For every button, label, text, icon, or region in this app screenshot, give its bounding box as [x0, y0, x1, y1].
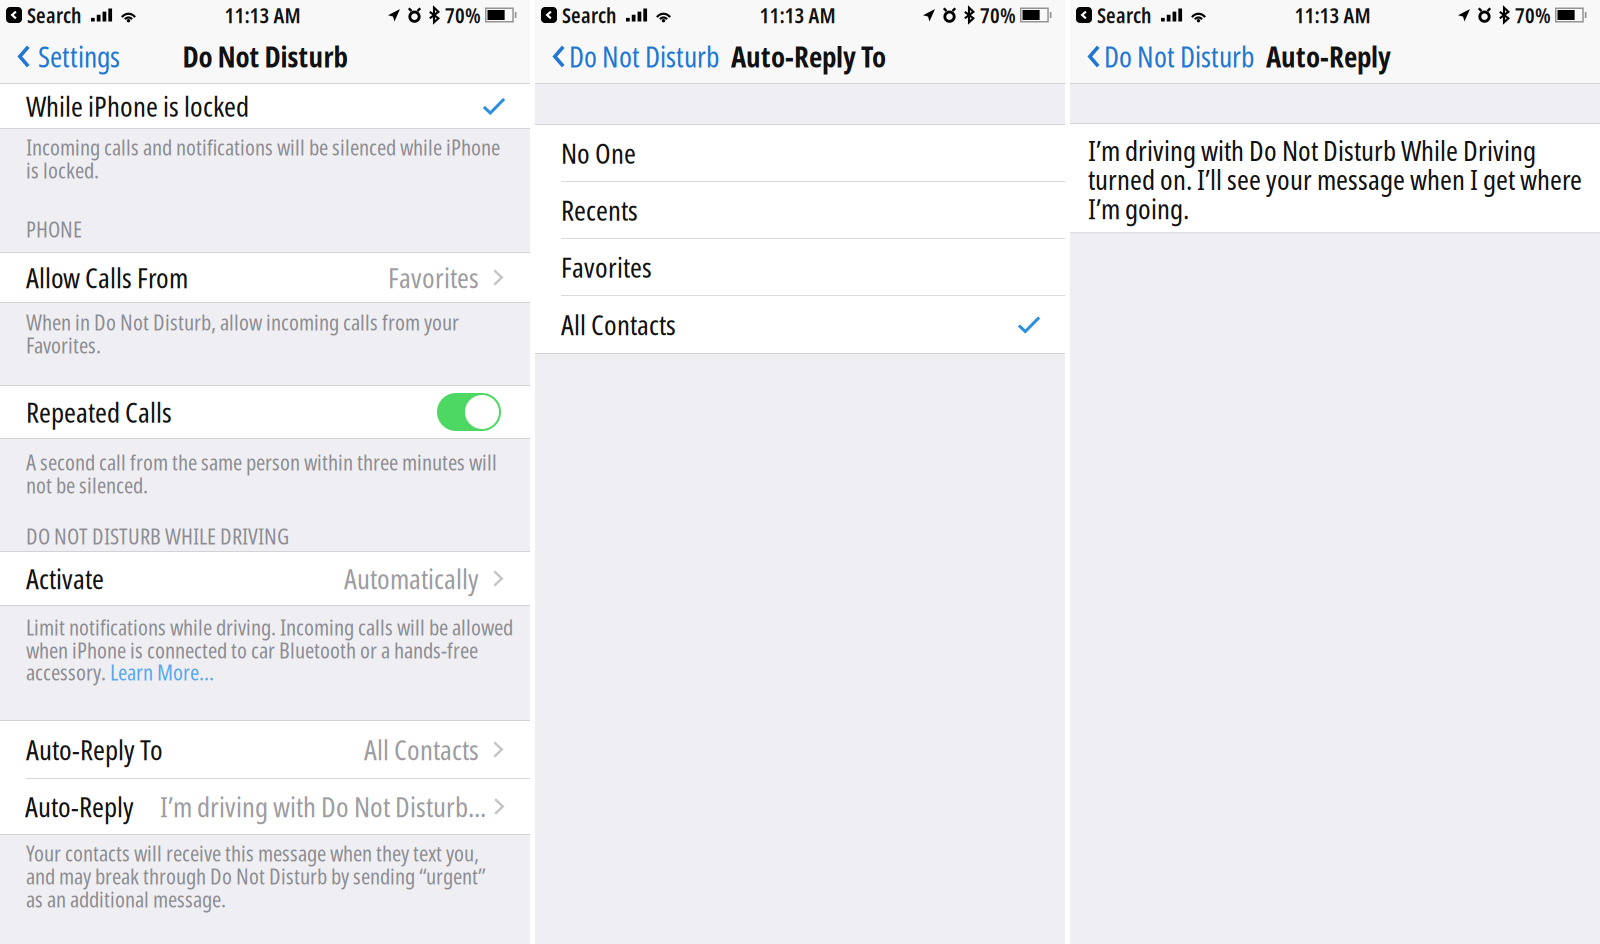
- staticText: Auto-Reply: [1266, 37, 1391, 76]
- staticText: Automatically: [344, 559, 479, 597]
- staticText: Limit notifications while driving. Incom…: [26, 612, 513, 665]
- staticText: Auto-Reply To: [26, 730, 163, 768]
- staticText: All Contacts: [561, 305, 676, 343]
- button[interactable]: Auto-Reply To: [0, 721, 530, 778]
- button[interactable]: Do Not Disturb: [1070, 28, 1258, 85]
- button[interactable]: While iPhone is locked: [0, 84, 530, 128]
- staticText: DO NOT DISTURB WHILE DRIVING: [26, 521, 289, 551]
- staticText: Favorites: [561, 248, 652, 286]
- staticText: 70%: [1515, 0, 1551, 30]
- button[interactable]: No One: [535, 125, 1065, 181]
- staticText: Search: [562, 0, 616, 30]
- staticText: Incoming calls and notifications will be…: [26, 132, 500, 185]
- staticText: accessory.: [26, 657, 110, 687]
- staticText: I’m driving with Do Not Disturb...: [160, 787, 486, 825]
- staticText: Search: [1097, 0, 1151, 30]
- staticText: Auto-Reply To: [731, 37, 886, 76]
- staticText: I’m driving with Do Not Disturb While Dr…: [1088, 131, 1582, 227]
- button[interactable]: Allow Calls From: [0, 253, 530, 302]
- staticText: 70%: [445, 0, 481, 30]
- staticText: 70%: [980, 0, 1016, 30]
- staticText: Learn More...: [110, 657, 214, 687]
- button[interactable]: Auto-Reply: [0, 779, 531, 834]
- button[interactable]: Do Not Disturb: [535, 28, 723, 85]
- staticText: Settings: [38, 37, 120, 76]
- button[interactable]: Recents: [535, 182, 1065, 238]
- staticText: Your contacts will receive this message …: [26, 838, 486, 914]
- staticText: Favorites: [388, 258, 479, 296]
- staticText: 11:13 AM: [1294, 0, 1370, 30]
- staticText: No One: [561, 134, 636, 172]
- staticText: 11:13 AM: [759, 0, 835, 30]
- staticText: Repeated Calls: [26, 393, 172, 431]
- button[interactable]: Activate: [0, 552, 530, 605]
- button[interactable]: Favorites: [535, 239, 1065, 295]
- staticText: PHONE: [26, 214, 82, 244]
- button[interactable]: Repeated Calls: [0, 386, 530, 438]
- staticText: Do Not Disturb: [182, 37, 347, 76]
- staticText: When in Do Not Disturb, allow incoming c…: [26, 307, 459, 360]
- staticText: Do Not Disturb: [569, 37, 719, 76]
- staticText: Allow Calls From: [26, 258, 188, 296]
- staticText: A second call from the same person withi…: [26, 447, 497, 500]
- button[interactable]: All Contacts: [535, 296, 1065, 353]
- staticText: Recents: [561, 191, 638, 229]
- staticText: While iPhone is locked: [26, 87, 249, 125]
- staticText: Search: [27, 0, 81, 30]
- staticText: All Contacts: [364, 730, 479, 768]
- staticText: Activate: [26, 559, 104, 597]
- staticText: 11:13 AM: [224, 0, 300, 30]
- staticText: Do Not Disturb: [1104, 37, 1254, 76]
- button[interactable]: Settings: [0, 28, 124, 85]
- staticText: Auto-Reply: [25, 787, 134, 825]
